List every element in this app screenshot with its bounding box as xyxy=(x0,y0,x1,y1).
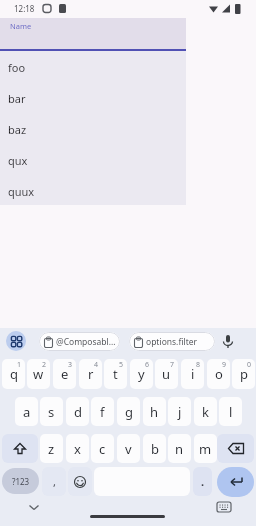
button[interactable] xyxy=(222,335,234,349)
staticText: r xyxy=(88,365,94,383)
button[interactable]: l xyxy=(219,397,242,426)
staticText: baz xyxy=(8,122,27,137)
button[interactable]: k xyxy=(194,397,217,426)
staticText: n xyxy=(175,440,184,458)
staticText: b xyxy=(151,440,159,458)
button[interactable]: v xyxy=(117,434,140,463)
staticText: e xyxy=(61,365,69,383)
button[interactable]: r xyxy=(79,359,102,389)
staticText: 6 xyxy=(145,360,150,370)
button[interactable]: baz xyxy=(0,114,186,145)
staticText: 1 xyxy=(17,360,22,370)
staticText: t xyxy=(113,365,118,383)
button[interactable]: foo xyxy=(0,52,186,83)
button[interactable]: n xyxy=(168,434,191,463)
button[interactable]: Name xyxy=(0,18,186,49)
button[interactable]: t xyxy=(104,359,127,389)
button[interactable]: s xyxy=(40,397,63,426)
staticText: . xyxy=(201,474,205,489)
button[interactable]: q xyxy=(2,359,25,389)
staticText: m xyxy=(199,440,212,458)
button[interactable] xyxy=(217,434,254,463)
button[interactable]: j xyxy=(168,397,191,426)
staticText: u xyxy=(162,365,171,383)
staticText: ?123 xyxy=(12,476,30,487)
button[interactable]: options.filter xyxy=(129,332,215,351)
button[interactable]: ?123 xyxy=(2,468,39,494)
staticText: f xyxy=(100,403,105,421)
button[interactable]: i xyxy=(181,359,204,389)
button[interactable]: g xyxy=(117,397,140,426)
button[interactable] xyxy=(2,434,38,463)
staticText: q xyxy=(10,365,18,383)
staticText: foo xyxy=(8,60,26,75)
staticText: Name xyxy=(10,21,32,31)
staticText: 0 xyxy=(247,360,252,370)
staticText: 12:18 xyxy=(14,3,35,14)
staticText: w xyxy=(33,365,44,383)
button[interactable]: z xyxy=(40,434,63,463)
staticText: i xyxy=(191,365,195,383)
button[interactable]: w xyxy=(27,359,50,389)
staticText: g xyxy=(125,403,133,421)
button[interactable] xyxy=(68,467,92,496)
button[interactable]: o xyxy=(207,359,230,389)
button[interactable]: p xyxy=(232,359,255,389)
staticText: o xyxy=(215,365,223,383)
button[interactable]: qux xyxy=(0,145,186,176)
button[interactable] xyxy=(217,502,231,512)
button[interactable]: a xyxy=(15,397,38,426)
staticText: p xyxy=(240,365,248,383)
button[interactable]: u xyxy=(155,359,178,389)
button[interactable]: c xyxy=(91,434,114,463)
button[interactable]: x xyxy=(66,434,89,463)
button[interactable] xyxy=(217,467,254,497)
staticText: y xyxy=(138,365,145,383)
button[interactable]: , xyxy=(42,467,66,496)
staticText: h xyxy=(150,403,159,421)
staticText: a xyxy=(23,403,31,421)
staticText: c xyxy=(99,440,106,458)
staticText: x xyxy=(74,440,81,458)
button[interactable]: h xyxy=(143,397,166,426)
button[interactable]: @Composabl… xyxy=(39,332,120,351)
staticText: 2 xyxy=(42,360,47,370)
staticText: 4 xyxy=(94,360,99,370)
button[interactable]: b xyxy=(143,434,166,463)
button[interactable]: e xyxy=(53,359,76,389)
staticText: 9 xyxy=(222,360,227,370)
staticText: 7 xyxy=(170,360,175,370)
button[interactable]: m xyxy=(194,434,217,463)
button[interactable]: quux xyxy=(0,176,186,206)
staticText: z xyxy=(48,440,55,458)
button[interactable]: bar xyxy=(0,83,186,114)
staticText: l xyxy=(229,403,233,421)
staticText: qux xyxy=(8,153,28,168)
button[interactable] xyxy=(6,331,26,351)
button[interactable]: . xyxy=(193,467,212,496)
staticText: j xyxy=(178,403,182,421)
button[interactable]: d xyxy=(66,397,89,426)
staticText: bar xyxy=(8,91,26,106)
staticText: 5 xyxy=(119,360,124,370)
staticText: options.filter xyxy=(146,336,198,348)
staticText: 3 xyxy=(68,360,73,370)
button[interactable]: f xyxy=(91,397,114,426)
staticText: v xyxy=(125,440,132,458)
staticText: k xyxy=(202,403,209,421)
staticText: quux xyxy=(8,184,35,199)
staticText: @Composabl… xyxy=(56,336,116,348)
staticText: 8 xyxy=(196,360,201,370)
staticText: d xyxy=(74,403,82,421)
staticText: s xyxy=(48,403,55,421)
button[interactable]: y xyxy=(130,359,153,389)
staticText: , xyxy=(53,474,56,489)
